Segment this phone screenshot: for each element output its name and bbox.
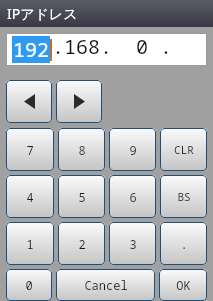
staticText: 2 (78, 236, 86, 252)
staticText: 6 (129, 189, 137, 205)
staticText: 9 (129, 142, 137, 158)
staticText: OK (176, 277, 191, 293)
button[interactable]: 9 (109, 128, 156, 171)
button[interactable]: Move left (6, 80, 52, 123)
button[interactable]: BS (160, 175, 207, 218)
staticText: .168. 0 . 1 (52, 33, 207, 66)
button[interactable]: 4 (6, 175, 54, 218)
staticText: . (180, 236, 188, 252)
button[interactable]: 1 (6, 222, 54, 265)
button[interactable]: 5 (58, 175, 105, 218)
button[interactable]: 8 (58, 128, 105, 171)
staticText: 8 (78, 142, 86, 158)
button[interactable]: . (160, 222, 207, 265)
button[interactable]: Move right (56, 80, 102, 123)
button[interactable]: 3 (109, 222, 156, 265)
button[interactable]: OK (159, 269, 207, 301)
button[interactable]: 2 (58, 222, 105, 265)
staticText: 1 (26, 236, 34, 252)
staticText: 192 (13, 36, 49, 63)
button[interactable]: 7 (6, 128, 54, 171)
staticText: Cancel (84, 277, 128, 293)
button[interactable]: 0 (6, 269, 52, 301)
button[interactable]: Cancel (56, 269, 155, 301)
staticText: CLR (174, 142, 194, 157)
staticText: 4 (26, 189, 34, 205)
staticText: 7 (26, 142, 34, 158)
button[interactable]: 6 (109, 175, 156, 218)
button[interactable]: CLR (160, 128, 207, 171)
staticText: 0 (25, 277, 33, 293)
staticText: 3 (129, 236, 137, 252)
staticText: 5 (78, 189, 86, 205)
staticText: BS (177, 189, 191, 204)
staticText: IPアドレス (7, 4, 78, 23)
